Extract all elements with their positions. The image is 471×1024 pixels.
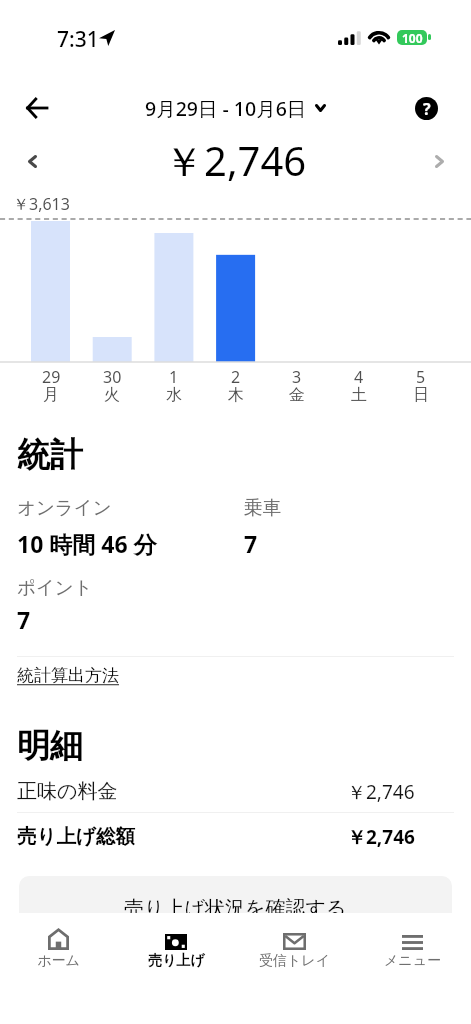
staticText: 2 xyxy=(231,366,241,388)
button[interactable]: 受信トレイ xyxy=(235,913,353,970)
staticText: 統計 xyxy=(17,434,83,476)
button[interactable]: Next week xyxy=(423,145,455,177)
staticText: 1 xyxy=(169,366,179,388)
button[interactable]: ホーム xyxy=(0,913,117,970)
staticText: 29 xyxy=(42,366,61,388)
button[interactable]: 9月29日 - 10月6日 xyxy=(0,92,471,124)
staticText: ￥2,746 xyxy=(347,779,415,805)
staticText: オンライン xyxy=(17,496,112,519)
staticText: ポイント xyxy=(17,576,93,599)
staticText: 火 xyxy=(104,385,120,405)
staticText: 5 xyxy=(416,366,426,388)
button[interactable]: 売り上げ状況を確認する xyxy=(19,876,452,933)
staticText: 土 xyxy=(351,385,367,405)
staticText: 7 xyxy=(17,604,31,635)
staticText: 売り上げ状況を確認する xyxy=(124,896,347,921)
button[interactable]: 売り上げ xyxy=(117,913,235,970)
button[interactable]: Help xyxy=(404,86,449,131)
staticText: 7 xyxy=(244,528,258,559)
staticText: ￥3,613 xyxy=(13,193,70,215)
staticText: 明細 xyxy=(17,725,83,767)
staticText: 金 xyxy=(289,385,305,405)
staticText: 売り上げ総額 xyxy=(17,824,135,849)
staticText: 4 xyxy=(354,366,364,388)
staticText: 30 xyxy=(103,366,122,388)
button[interactable]: メニュー xyxy=(353,913,471,970)
staticText: メニュー xyxy=(384,952,441,970)
staticText: ￥2,746 xyxy=(347,824,415,850)
button[interactable]: Previous week xyxy=(16,145,48,177)
staticText: 7:31 xyxy=(57,25,99,54)
staticText: 乗車 xyxy=(244,496,281,519)
button[interactable]: 統計算出方法 xyxy=(17,665,119,686)
staticText: ? xyxy=(423,98,431,120)
staticText: 日 xyxy=(413,385,429,405)
staticText: ホーム xyxy=(37,952,80,970)
staticText: 月 xyxy=(43,385,59,405)
staticText: 受信トレイ xyxy=(259,952,330,970)
staticText: 売り上げ xyxy=(148,952,205,970)
staticText: 水 xyxy=(166,385,182,405)
staticText: 3 xyxy=(292,366,302,388)
staticText: 100 xyxy=(402,30,423,45)
staticText: 10 時間 46 分 xyxy=(17,528,157,559)
staticText: 正味の料金 xyxy=(17,779,118,804)
button[interactable]: Back xyxy=(15,86,59,130)
staticText: ￥2,746 xyxy=(164,133,307,188)
staticText: 木 xyxy=(228,385,244,405)
staticText: 9月29日 - 10月6日 xyxy=(145,95,307,122)
